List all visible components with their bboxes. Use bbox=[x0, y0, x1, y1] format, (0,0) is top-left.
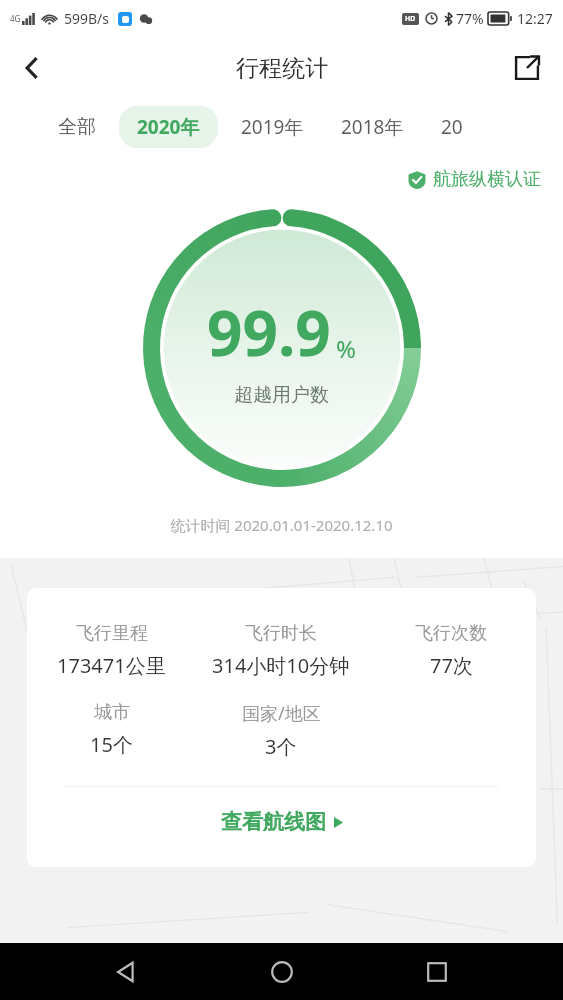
staticText: % bbox=[336, 332, 356, 365]
button[interactable]: 2020年 bbox=[119, 106, 218, 148]
staticText: 3个 bbox=[265, 733, 297, 760]
staticText: 314小时10分钟 bbox=[212, 652, 350, 679]
staticText: 全部 bbox=[58, 115, 96, 139]
staticText: HD bbox=[405, 14, 416, 24]
staticText: 统计时间 2020.01.01-2020.12.10 bbox=[0, 515, 563, 535]
staticText: 12:27 bbox=[517, 9, 553, 28]
staticText: 查看航线图 bbox=[221, 809, 326, 835]
button[interactable]: 返回 bbox=[8, 44, 56, 92]
staticText: 2018年 bbox=[341, 114, 404, 140]
staticText: 4G bbox=[10, 13, 21, 24]
button[interactable]: 查看航线图 bbox=[27, 787, 536, 857]
staticText: 行程统计 bbox=[236, 54, 328, 83]
button[interactable]: 最近任务 bbox=[407, 943, 467, 1000]
staticText: 飞行次数 bbox=[415, 622, 487, 645]
staticText: 77次 bbox=[430, 652, 473, 679]
staticText: 173471公里 bbox=[57, 652, 166, 679]
button[interactable]: 2019年 bbox=[227, 106, 318, 148]
staticText: 99.9 bbox=[207, 290, 331, 374]
button[interactable]: 返回 bbox=[96, 943, 156, 1000]
button[interactable]: 全部 bbox=[44, 107, 110, 147]
staticText: 2019年 bbox=[241, 114, 304, 140]
staticText: 航旅纵横认证 bbox=[433, 168, 541, 191]
staticText: 超越用户数 bbox=[234, 383, 329, 407]
staticText: 国家/地区 bbox=[242, 701, 321, 726]
staticText: 飞行时长 bbox=[245, 622, 317, 645]
staticText: 2020年 bbox=[137, 114, 200, 140]
button[interactable]: 分享 bbox=[503, 44, 551, 92]
button[interactable]: 主屏幕 bbox=[252, 943, 312, 1000]
staticText: 599B/s bbox=[64, 9, 110, 28]
button[interactable]: 2018年 bbox=[327, 106, 418, 148]
staticText: 飞行里程 bbox=[76, 622, 148, 645]
staticText: 15个 bbox=[90, 731, 133, 758]
staticText: 城市 bbox=[94, 701, 130, 724]
button[interactable]: 20 bbox=[427, 106, 477, 148]
staticText: 20 bbox=[441, 114, 463, 140]
staticText: 77% bbox=[456, 9, 484, 28]
